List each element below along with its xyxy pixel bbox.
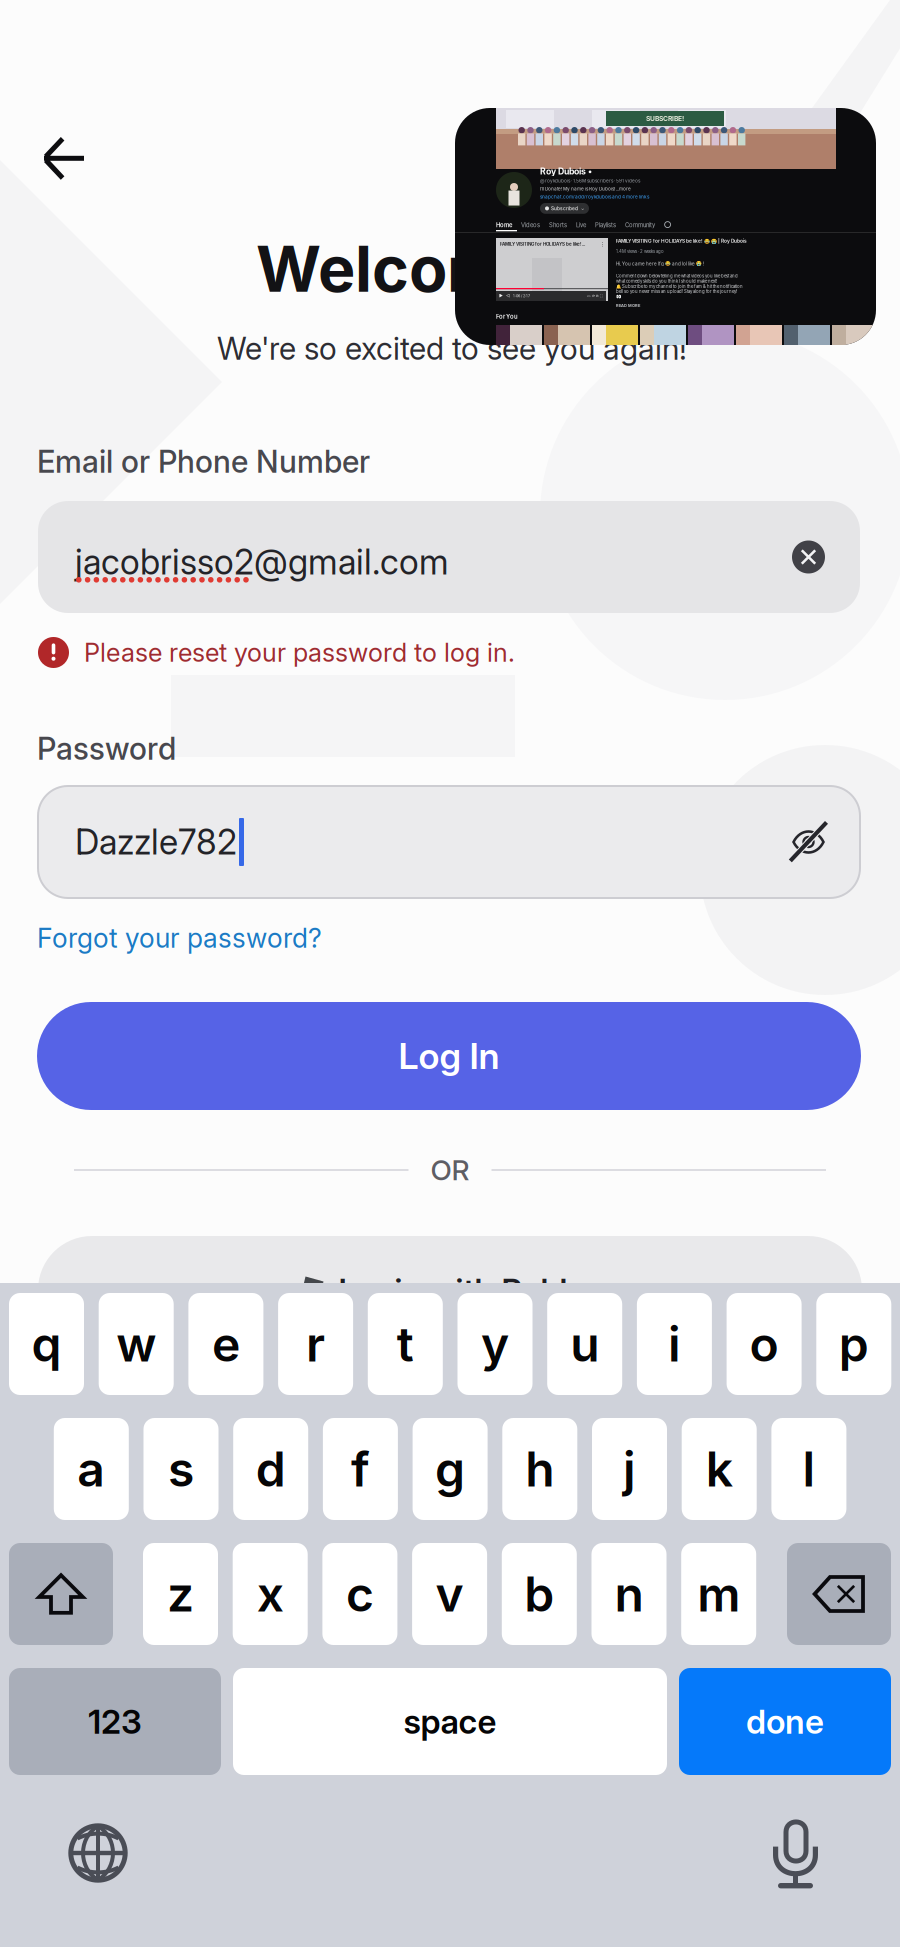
button[interactable]: n [591, 1543, 666, 1645]
staticText: q [31, 1315, 61, 1373]
button[interactable]: 123 [9, 1668, 221, 1775]
button[interactable]: b [502, 1543, 577, 1645]
button[interactable]: g [413, 1418, 488, 1520]
staticText: FAMILY VISITING for HOLIDAYS be like! 😂 … [616, 238, 747, 244]
staticText: Email or Phone Number [37, 443, 370, 480]
staticText: y [481, 1315, 509, 1373]
staticText: v [436, 1565, 464, 1623]
staticText: 1.4M views · 2 weeks ago [616, 249, 664, 254]
button[interactable]: m [681, 1543, 756, 1645]
staticText: ⌄ [580, 206, 584, 211]
button[interactable]: j [592, 1418, 667, 1520]
staticText: Playlists [595, 221, 616, 229]
button[interactable]: p [816, 1293, 891, 1395]
button[interactable]: Back [23, 117, 105, 200]
button[interactable]: Show password [777, 809, 840, 875]
staticText: READ MORE [616, 303, 640, 308]
button[interactable]: r [278, 1293, 353, 1395]
staticText: ◁ [506, 293, 510, 299]
button[interactable]: Shift [9, 1543, 113, 1645]
staticText: Log In [398, 1034, 499, 1078]
staticText: I'll Donate! My name is Roy Dubois! ...m… [540, 186, 631, 192]
staticText: space [403, 1701, 496, 1742]
button[interactable]: h [502, 1418, 577, 1520]
button[interactable]: c [322, 1543, 397, 1645]
staticText: z [167, 1565, 194, 1623]
button[interactable]: Change keyboard [68, 1823, 128, 1883]
staticText: f [351, 1440, 370, 1498]
staticText: jacobrisso2@gmail.com [75, 541, 449, 583]
button[interactable]: t [368, 1293, 443, 1395]
staticText: Live [576, 221, 586, 229]
button[interactable]: f [323, 1418, 398, 1520]
button[interactable]: a [54, 1418, 129, 1520]
staticText: x [257, 1565, 284, 1623]
button[interactable]: v [412, 1543, 487, 1645]
staticText: i [668, 1315, 681, 1373]
staticText: Please reset your password to log in. [84, 637, 515, 668]
button[interactable]: x [233, 1543, 308, 1645]
button[interactable]: y [457, 1293, 532, 1395]
staticText: We're so excited to see you again! [217, 330, 687, 367]
button[interactable]: w [99, 1293, 174, 1395]
staticText: 1:06 / 2:17 [513, 294, 530, 298]
staticText: e [212, 1315, 240, 1373]
button[interactable]: Delete [787, 1543, 891, 1645]
staticText: l [802, 1440, 815, 1498]
staticText: m [697, 1565, 740, 1623]
staticText: o [750, 1315, 779, 1373]
button[interactable]: done [679, 1668, 891, 1775]
staticText: w [116, 1315, 156, 1373]
button[interactable]: s [143, 1418, 218, 1520]
staticText: Roy Dubois • [540, 166, 592, 176]
button[interactable]: i [637, 1293, 712, 1395]
staticText: Subscribed [551, 205, 578, 211]
staticText: h [525, 1440, 554, 1498]
staticText: g [435, 1440, 465, 1498]
staticText: OR [430, 1153, 469, 1187]
staticText: snapchat.com/add/roykdubois and 4 more l… [540, 194, 649, 200]
staticText: Shorts [549, 221, 567, 229]
staticText: Welcome back [256, 231, 705, 307]
staticText: Dazzle782 [75, 821, 237, 863]
staticText: SUBSCRIBE! [646, 114, 684, 123]
button[interactable]: Clear text [781, 529, 836, 584]
staticText: u [570, 1315, 599, 1373]
staticText: Community [625, 221, 655, 229]
staticText: n [614, 1565, 643, 1623]
button[interactable]: space [233, 1668, 667, 1775]
staticText: r [306, 1315, 325, 1373]
button[interactable]: u [547, 1293, 622, 1395]
staticText: ▶ [499, 293, 503, 299]
staticText: Hi, You came here lfg 😂 and lol like 😭 ! [616, 261, 704, 266]
staticText: Login with Roblox [338, 1271, 602, 1309]
button[interactable]: e [188, 1293, 263, 1395]
staticText: 123 [88, 1701, 142, 1742]
staticText: t [397, 1315, 414, 1373]
staticText: ▭ ⟳ ⧉ ⛶ [587, 294, 603, 298]
staticText: a [77, 1440, 105, 1498]
button[interactable]: Dictate [773, 1818, 819, 1890]
button[interactable]: k [682, 1418, 757, 1520]
staticText: d [256, 1440, 286, 1498]
button[interactable]: d [233, 1418, 308, 1520]
button[interactable]: Log In [37, 1002, 861, 1110]
button[interactable]: l [771, 1418, 846, 1520]
staticText: Home [496, 221, 512, 229]
button[interactable]: Login with Roblox [38, 1236, 862, 1344]
staticText: k [706, 1440, 733, 1498]
button[interactable]: o [727, 1293, 802, 1395]
staticText: Forgot your password? [37, 922, 322, 954]
staticText: j [623, 1440, 636, 1498]
staticText: Comment down below telling me what video… [616, 273, 743, 299]
staticText: Password [37, 730, 176, 767]
staticText: @roykdubois · 1.56M subscribers · 591 vi… [540, 178, 640, 184]
staticText: done [746, 1701, 824, 1742]
button[interactable]: Forgot your password? [37, 922, 322, 954]
staticText: b [524, 1565, 554, 1623]
staticText: For You [496, 313, 518, 320]
staticText: ⋮ [600, 241, 605, 247]
button[interactable]: z [143, 1543, 218, 1645]
button[interactable]: q [9, 1293, 84, 1395]
staticText: s [168, 1440, 194, 1498]
